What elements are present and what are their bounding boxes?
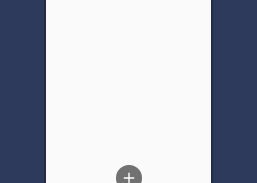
button[interactable]: Add — [116, 165, 142, 183]
